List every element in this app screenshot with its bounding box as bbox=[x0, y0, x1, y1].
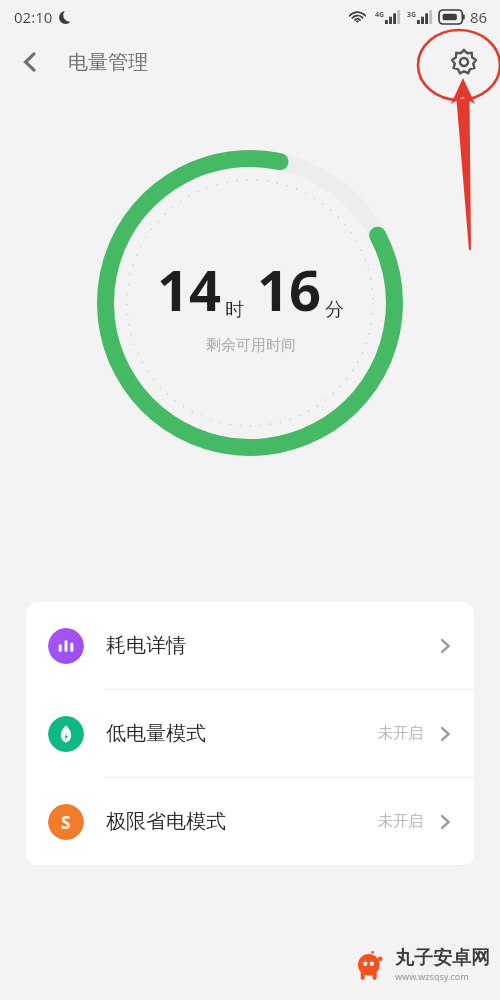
button[interactable]: 低电量模式 bbox=[26, 690, 474, 777]
staticText: 未开启 bbox=[378, 724, 423, 743]
staticText: 极限省电模式 bbox=[106, 809, 226, 834]
button[interactable]: S bbox=[26, 778, 474, 865]
staticText: 14 bbox=[157, 251, 222, 327]
staticText: 耗电详情 bbox=[106, 633, 186, 658]
staticText: 丸子安卓网 bbox=[395, 946, 490, 970]
button[interactable]: Back bbox=[6, 38, 54, 86]
staticText: 4G bbox=[375, 10, 385, 20]
staticText: 02:10 bbox=[14, 7, 53, 27]
staticText: 未开启 bbox=[378, 812, 423, 831]
staticText: 低电量模式 bbox=[106, 721, 206, 746]
staticText: 86 bbox=[470, 7, 488, 27]
staticText: 3G bbox=[407, 10, 417, 20]
staticText: S bbox=[61, 811, 71, 834]
staticText: 16 bbox=[257, 251, 322, 327]
staticText: 电量管理 bbox=[68, 50, 148, 75]
staticText: www.wzsqsy.com bbox=[395, 970, 469, 982]
staticText: 剩余可用时间 bbox=[206, 336, 296, 355]
staticText: 时 bbox=[225, 298, 244, 322]
button[interactable]: Settings bbox=[440, 38, 488, 86]
button[interactable]: 耗电详情 bbox=[26, 602, 474, 689]
staticText: 分 bbox=[325, 298, 344, 322]
